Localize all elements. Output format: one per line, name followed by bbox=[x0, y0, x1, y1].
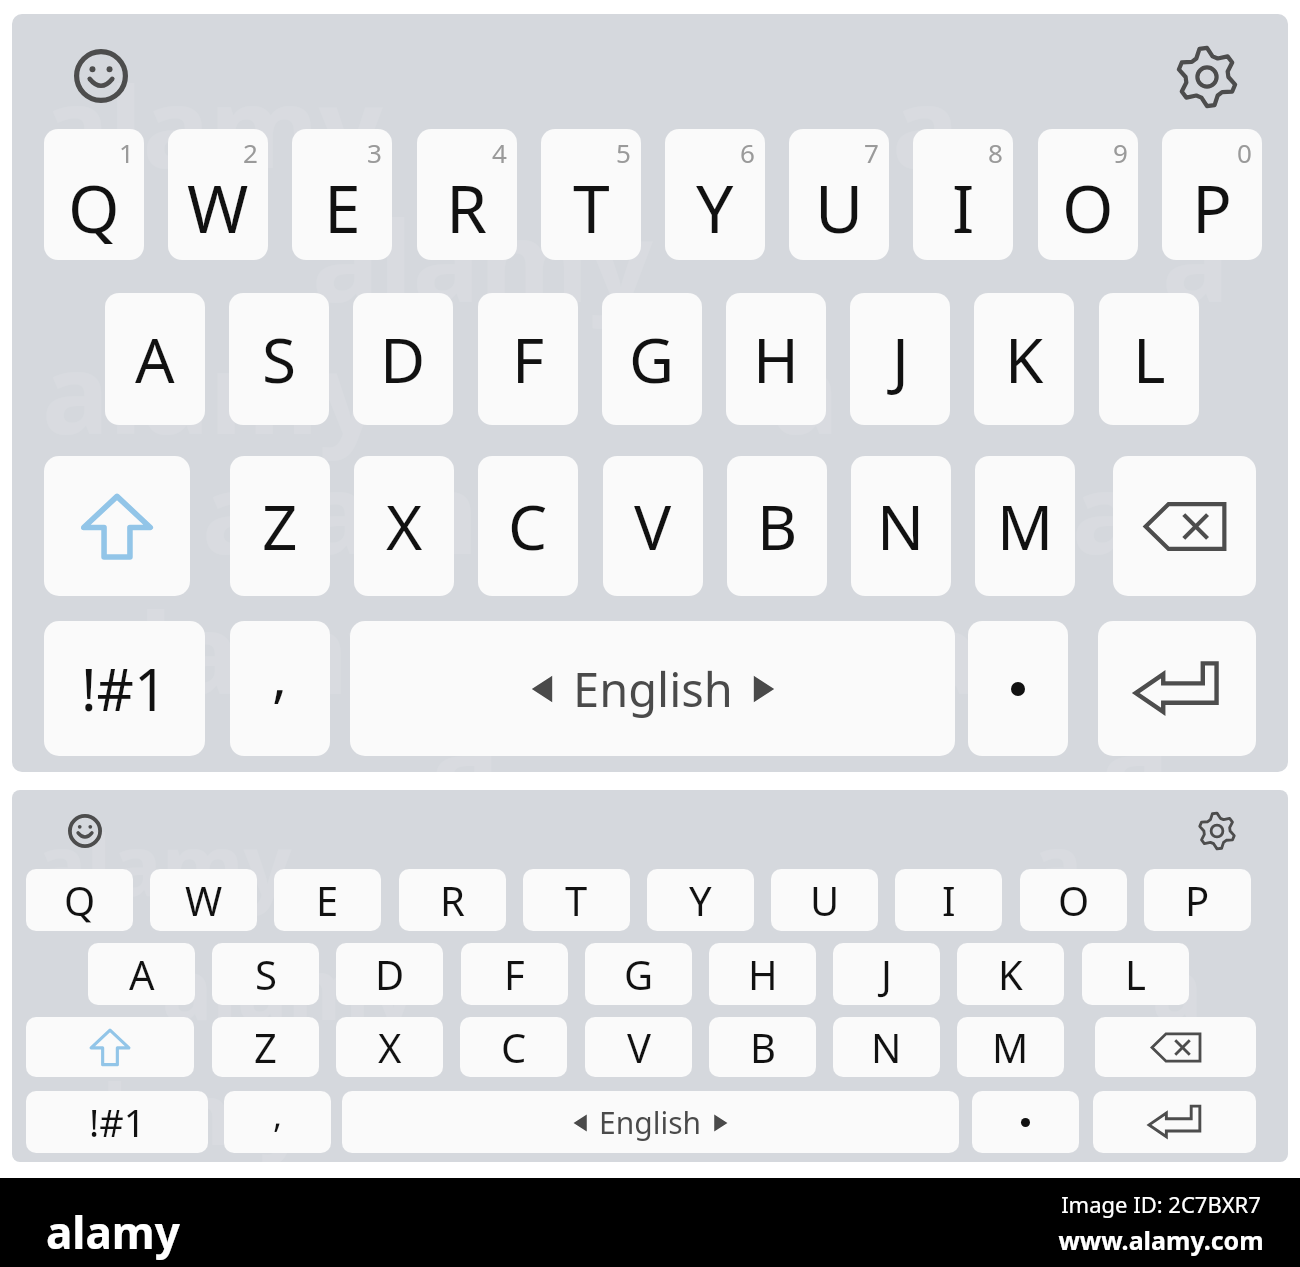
button[interactable]: Emoji bbox=[64, 810, 106, 852]
button[interactable]: 8 bbox=[913, 129, 1013, 260]
button[interactable]: Enter bbox=[1093, 1091, 1256, 1153]
button[interactable]: G bbox=[585, 943, 692, 1005]
button[interactable]: 7 bbox=[789, 129, 889, 260]
button[interactable]: 9 bbox=[1038, 129, 1138, 260]
staticText: R bbox=[440, 873, 465, 927]
staticText: alamy bbox=[52, 1055, 308, 1162]
button[interactable] bbox=[972, 1091, 1079, 1153]
button[interactable]: Y bbox=[647, 869, 754, 931]
button[interactable]: A bbox=[88, 943, 195, 1005]
button[interactable]: Settings bbox=[1194, 808, 1240, 854]
button[interactable]: L bbox=[1082, 943, 1189, 1005]
staticText: L bbox=[1125, 947, 1146, 1001]
button[interactable]: N bbox=[851, 456, 951, 596]
button[interactable]: N bbox=[833, 1017, 940, 1077]
button[interactable]: , bbox=[230, 621, 330, 756]
staticText: , bbox=[272, 637, 288, 713]
button[interactable]: S bbox=[229, 293, 329, 425]
button[interactable]: Shift bbox=[26, 1017, 194, 1077]
button[interactable]: English, switch language bbox=[350, 621, 955, 756]
button[interactable]: M bbox=[957, 1017, 1064, 1077]
staticText: L bbox=[1133, 317, 1166, 401]
staticText: F bbox=[504, 947, 525, 1001]
button[interactable]: !#1 bbox=[26, 1091, 208, 1153]
button[interactable]: 1 bbox=[44, 129, 144, 260]
button[interactable]: P bbox=[1144, 869, 1251, 931]
staticText: D bbox=[380, 317, 426, 401]
button[interactable]: O bbox=[1020, 869, 1127, 931]
button[interactable]: C bbox=[478, 456, 578, 596]
button[interactable]: W bbox=[150, 869, 257, 931]
button[interactable]: D bbox=[336, 943, 443, 1005]
button[interactable]: Z bbox=[230, 456, 330, 596]
button[interactable]: Z bbox=[212, 1017, 319, 1077]
button[interactable]: F bbox=[461, 943, 568, 1005]
button[interactable]: Enter bbox=[1098, 621, 1256, 756]
button[interactable]: 3 bbox=[292, 129, 392, 260]
button[interactable]: B bbox=[709, 1017, 816, 1077]
button[interactable]: D bbox=[353, 293, 453, 425]
staticText: 4 bbox=[492, 135, 507, 170]
button[interactable]: Q bbox=[26, 869, 133, 931]
button[interactable]: 0 bbox=[1162, 129, 1262, 260]
staticText: alamy bbox=[42, 48, 383, 201]
staticText: V bbox=[634, 484, 672, 568]
button[interactable]: K bbox=[974, 293, 1074, 425]
button[interactable]: E bbox=[274, 869, 381, 931]
button[interactable]: X bbox=[336, 1017, 443, 1077]
staticText: 2 bbox=[243, 135, 258, 170]
button[interactable]: Settings bbox=[1172, 42, 1242, 112]
button[interactable]: J bbox=[850, 293, 950, 425]
button[interactable]: A bbox=[105, 293, 205, 425]
button[interactable]: K bbox=[957, 943, 1064, 1005]
staticText: W bbox=[187, 162, 249, 252]
staticText: alamy bbox=[72, 574, 413, 727]
staticText: alamy bbox=[202, 434, 543, 587]
button[interactable]: R bbox=[399, 869, 506, 931]
staticText: J bbox=[881, 947, 892, 1001]
button[interactable]: Backspace bbox=[1095, 1017, 1256, 1077]
staticText: !#1 bbox=[81, 649, 168, 728]
staticText: alamy bbox=[162, 930, 418, 1044]
staticText: N bbox=[871, 1020, 902, 1074]
button[interactable]: I bbox=[895, 869, 1002, 931]
button[interactable]: 2 bbox=[168, 129, 268, 260]
button[interactable]: G bbox=[602, 293, 702, 425]
button[interactable]: 5 bbox=[541, 129, 641, 260]
button[interactable] bbox=[968, 621, 1068, 756]
button[interactable]: M bbox=[975, 456, 1075, 596]
button[interactable]: T bbox=[523, 869, 630, 931]
staticText: 7 bbox=[864, 135, 879, 170]
staticText: alamy bbox=[36, 806, 292, 920]
staticText: a bbox=[1162, 182, 1230, 335]
button[interactable]: , bbox=[224, 1091, 331, 1153]
staticText: alamy bbox=[42, 314, 383, 467]
button[interactable]: 6 bbox=[665, 129, 765, 260]
staticText: a bbox=[1032, 806, 1083, 920]
button[interactable]: !#1 bbox=[44, 621, 205, 756]
button[interactable]: 4 bbox=[417, 129, 517, 260]
staticText: P bbox=[1185, 873, 1210, 927]
button[interactable]: J bbox=[833, 943, 940, 1005]
button[interactable]: U bbox=[771, 869, 878, 931]
button[interactable]: H bbox=[709, 943, 816, 1005]
staticText: A bbox=[135, 317, 175, 401]
button[interactable]: X bbox=[354, 456, 454, 596]
button[interactable]: H bbox=[726, 293, 826, 425]
button[interactable]: V bbox=[585, 1017, 692, 1077]
button[interactable]: S bbox=[212, 943, 319, 1005]
button[interactable]: Backspace bbox=[1113, 456, 1256, 596]
staticText: a bbox=[912, 574, 980, 727]
button[interactable]: B bbox=[727, 456, 827, 596]
button[interactable]: C bbox=[460, 1017, 567, 1077]
button[interactable]: V bbox=[603, 456, 703, 596]
staticText: Q bbox=[68, 162, 120, 252]
button[interactable]: Emoji bbox=[70, 45, 132, 107]
button[interactable]: English, switch language bbox=[342, 1091, 959, 1153]
staticText: 9 bbox=[1113, 135, 1128, 170]
button[interactable]: F bbox=[478, 293, 578, 425]
button[interactable]: L bbox=[1099, 293, 1199, 425]
button[interactable]: Shift bbox=[44, 456, 190, 596]
staticText: P bbox=[1192, 162, 1232, 252]
staticText: D bbox=[375, 947, 405, 1001]
